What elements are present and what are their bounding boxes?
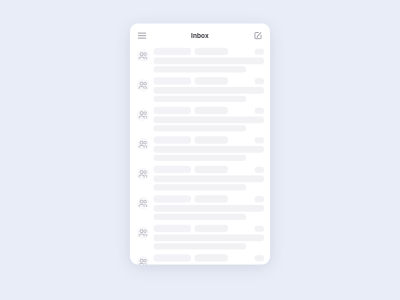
staticText: Inbox (191, 32, 209, 39)
button[interactable] (130, 136, 270, 166)
button[interactable] (130, 195, 270, 225)
button[interactable] (130, 166, 270, 195)
button[interactable] (130, 107, 270, 136)
button[interactable] (130, 48, 270, 77)
button[interactable] (130, 225, 270, 254)
button[interactable] (130, 77, 270, 107)
button[interactable]: Compose (250, 28, 266, 44)
button[interactable] (130, 254, 270, 284)
button[interactable]: Menu (134, 28, 150, 44)
